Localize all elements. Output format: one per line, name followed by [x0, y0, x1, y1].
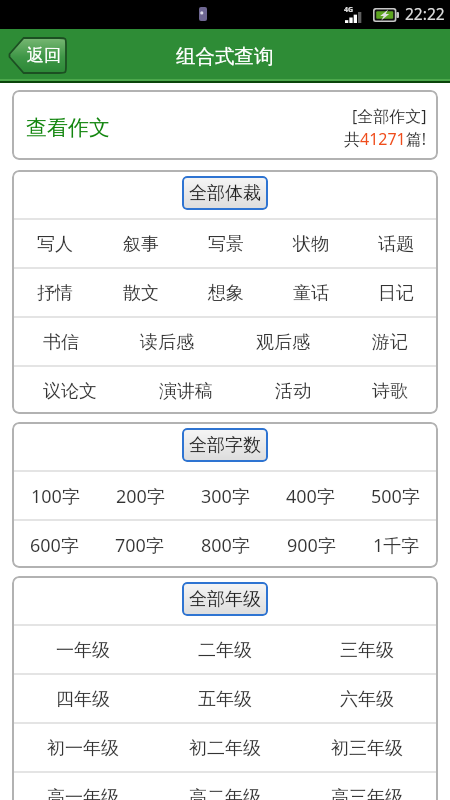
staticText: 组合式查询: [176, 44, 274, 69]
button[interactable]: 四年级: [12, 675, 154, 722]
button[interactable]: 演讲稿: [128, 367, 244, 414]
staticText: 900字: [287, 533, 336, 558]
button[interactable]: 抒情: [12, 269, 98, 316]
staticText: 五年级: [198, 688, 252, 711]
staticText: 写人: [37, 233, 73, 256]
button[interactable]: 议论文: [12, 367, 128, 414]
button[interactable]: 游记: [341, 318, 438, 365]
button[interactable]: 一年级: [12, 626, 154, 673]
staticText: 叙事: [123, 233, 159, 256]
staticText: 返回: [27, 45, 61, 66]
staticText: 演讲稿: [159, 380, 213, 403]
button[interactable]: 初一年级: [12, 724, 154, 771]
button[interactable]: 高一年级: [12, 773, 154, 800]
staticText: 600字: [30, 533, 79, 558]
button[interactable]: 读后感: [109, 318, 225, 365]
staticText: 300字: [201, 484, 250, 509]
staticText: 初三年级: [331, 737, 403, 760]
staticText: 话题: [378, 233, 414, 256]
staticText: 日记: [378, 282, 414, 305]
staticText: 六年级: [340, 688, 394, 711]
staticText: 初二年级: [189, 737, 261, 760]
button[interactable]: 观后感: [225, 318, 341, 365]
button[interactable]: 叙事: [98, 220, 183, 267]
staticText: 高一年级: [47, 786, 119, 800]
staticText: 100字: [31, 484, 80, 509]
button[interactable]: 初二年级: [154, 724, 296, 771]
button[interactable]: 诗歌: [341, 367, 438, 414]
button[interactable]: 400字: [268, 472, 353, 519]
button[interactable]: 查看作文: [12, 90, 438, 160]
staticText: 全部年级: [189, 588, 261, 611]
button[interactable]: 书信: [12, 318, 109, 365]
staticText: 状物: [293, 233, 329, 256]
button[interactable]: 500字: [353, 472, 438, 519]
staticText: 高三年级: [331, 786, 403, 800]
button[interactable]: 全部体裁: [182, 176, 268, 210]
staticText: 查看作文: [26, 115, 110, 141]
staticText: [全部作文]: [352, 105, 427, 127]
staticText: 4G: [344, 5, 354, 15]
button[interactable]: 五年级: [154, 675, 296, 722]
button[interactable]: 初三年级: [296, 724, 438, 771]
staticText: 童话: [293, 282, 329, 305]
staticText: 议论文: [43, 380, 97, 403]
button[interactable]: 三年级: [296, 626, 438, 673]
button[interactable]: 高三年级: [296, 773, 438, 800]
button[interactable]: 高二年级: [154, 773, 296, 800]
staticText: 诗歌: [372, 380, 408, 403]
staticText: 200字: [116, 484, 165, 509]
staticText: 散文: [123, 282, 159, 305]
staticText: 共41271篇!: [344, 128, 427, 150]
staticText: 高二年级: [189, 786, 261, 800]
button[interactable]: 1千字: [354, 521, 438, 568]
staticText: 书信: [43, 331, 79, 354]
staticText: 二年级: [198, 639, 252, 662]
staticText: 500字: [371, 484, 420, 509]
button[interactable]: 200字: [98, 472, 183, 519]
staticText: 读后感: [140, 331, 194, 354]
staticText: 400字: [286, 484, 335, 509]
staticText: 写景: [208, 233, 244, 256]
button[interactable]: 二年级: [154, 626, 296, 673]
staticText: 抒情: [37, 282, 73, 305]
button[interactable]: 童话: [268, 269, 353, 316]
button[interactable]: 想象: [183, 269, 268, 316]
button[interactable]: 全部字数: [182, 428, 268, 462]
button[interactable]: 日记: [353, 269, 438, 316]
staticText: 活动: [275, 380, 311, 403]
staticText: 想象: [208, 282, 244, 305]
button[interactable]: 话题: [353, 220, 438, 267]
staticText: 700字: [115, 533, 164, 558]
button[interactable]: 散文: [98, 269, 183, 316]
staticText: 游记: [372, 331, 408, 354]
staticText: 全部体裁: [189, 182, 261, 205]
button[interactable]: 100字: [12, 472, 98, 519]
staticText: 一年级: [56, 639, 110, 662]
staticText: 1千字: [373, 533, 420, 558]
button[interactable]: 返回: [8, 38, 66, 73]
button[interactable]: 800字: [182, 521, 268, 568]
button[interactable]: 全部年级: [182, 582, 268, 616]
button[interactable]: 900字: [268, 521, 354, 568]
staticText: 观后感: [256, 331, 310, 354]
button[interactable]: 写景: [183, 220, 268, 267]
button[interactable]: 状物: [268, 220, 353, 267]
button[interactable]: 六年级: [296, 675, 438, 722]
staticText: 四年级: [56, 688, 110, 711]
button[interactable]: 活动: [244, 367, 341, 414]
button[interactable]: 写人: [12, 220, 98, 267]
button[interactable]: 700字: [97, 521, 182, 568]
staticText: 22:22: [405, 3, 445, 24]
staticText: 三年级: [340, 639, 394, 662]
staticText: 全部字数: [189, 434, 261, 457]
staticText: 初一年级: [47, 737, 119, 760]
button[interactable]: 600字: [12, 521, 97, 568]
button[interactable]: 300字: [183, 472, 268, 519]
staticText: 800字: [201, 533, 250, 558]
